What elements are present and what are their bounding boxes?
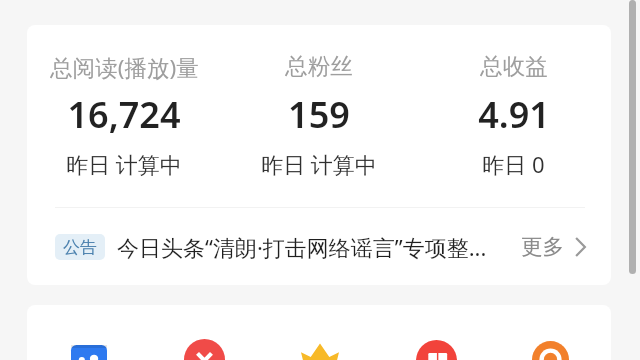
button[interactable]: 放心借 [516, 332, 584, 360]
staticText: 今日头条“清朗·打击网络谣言”专项整... [117, 232, 521, 262]
staticText: 昨日 计算中 [66, 149, 182, 179]
button[interactable]: 小说 [402, 332, 470, 360]
staticText: 4.91 [478, 90, 550, 139]
staticText: 昨日 计算中 [261, 149, 377, 179]
staticText: 总收益 [480, 52, 548, 80]
staticText: 昨日 0 [482, 149, 545, 179]
button[interactable]: 头条号 [170, 332, 238, 360]
button[interactable]: 发布视频 [55, 332, 123, 360]
button[interactable]: 会员中心 [286, 332, 354, 360]
staticText: 公告 [63, 237, 97, 258]
button[interactable]: 公告 [27, 208, 611, 285]
staticText: 16,724 [67, 90, 181, 139]
staticText: 总阅读(播放)量 [50, 52, 199, 83]
staticText: 更多 [521, 233, 564, 260]
staticText: 总粉丝 [285, 52, 353, 80]
staticText: 159 [288, 90, 350, 139]
